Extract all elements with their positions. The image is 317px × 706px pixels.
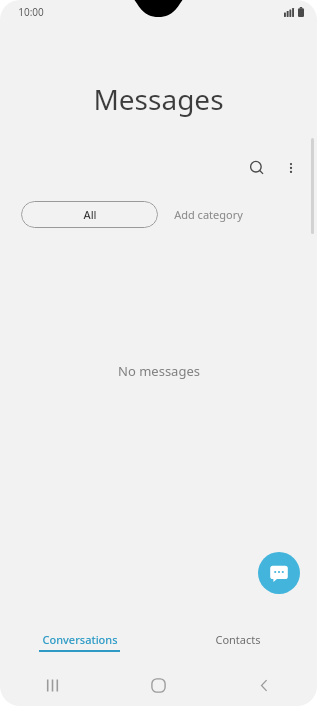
button[interactable]: Home <box>105 664 211 706</box>
button[interactable]: Contacts <box>158 620 317 664</box>
button[interactable]: Recents <box>0 664 105 706</box>
button[interactable]: Back <box>211 664 317 706</box>
button[interactable]: All <box>21 201 158 228</box>
staticText: Conversations <box>42 632 118 647</box>
button[interactable]: New conversation <box>258 552 300 594</box>
button[interactable]: Search <box>239 150 275 186</box>
button[interactable]: Conversations <box>0 620 158 664</box>
button[interactable]: Add category <box>166 203 251 226</box>
staticText: Add category <box>174 207 243 222</box>
staticText: 10:00 <box>18 5 44 19</box>
staticText: No messages <box>118 362 200 380</box>
staticText: Contacts <box>215 632 261 647</box>
staticText: Messages <box>93 80 224 118</box>
button[interactable]: More options <box>275 152 307 184</box>
staticText: All <box>83 207 97 222</box>
